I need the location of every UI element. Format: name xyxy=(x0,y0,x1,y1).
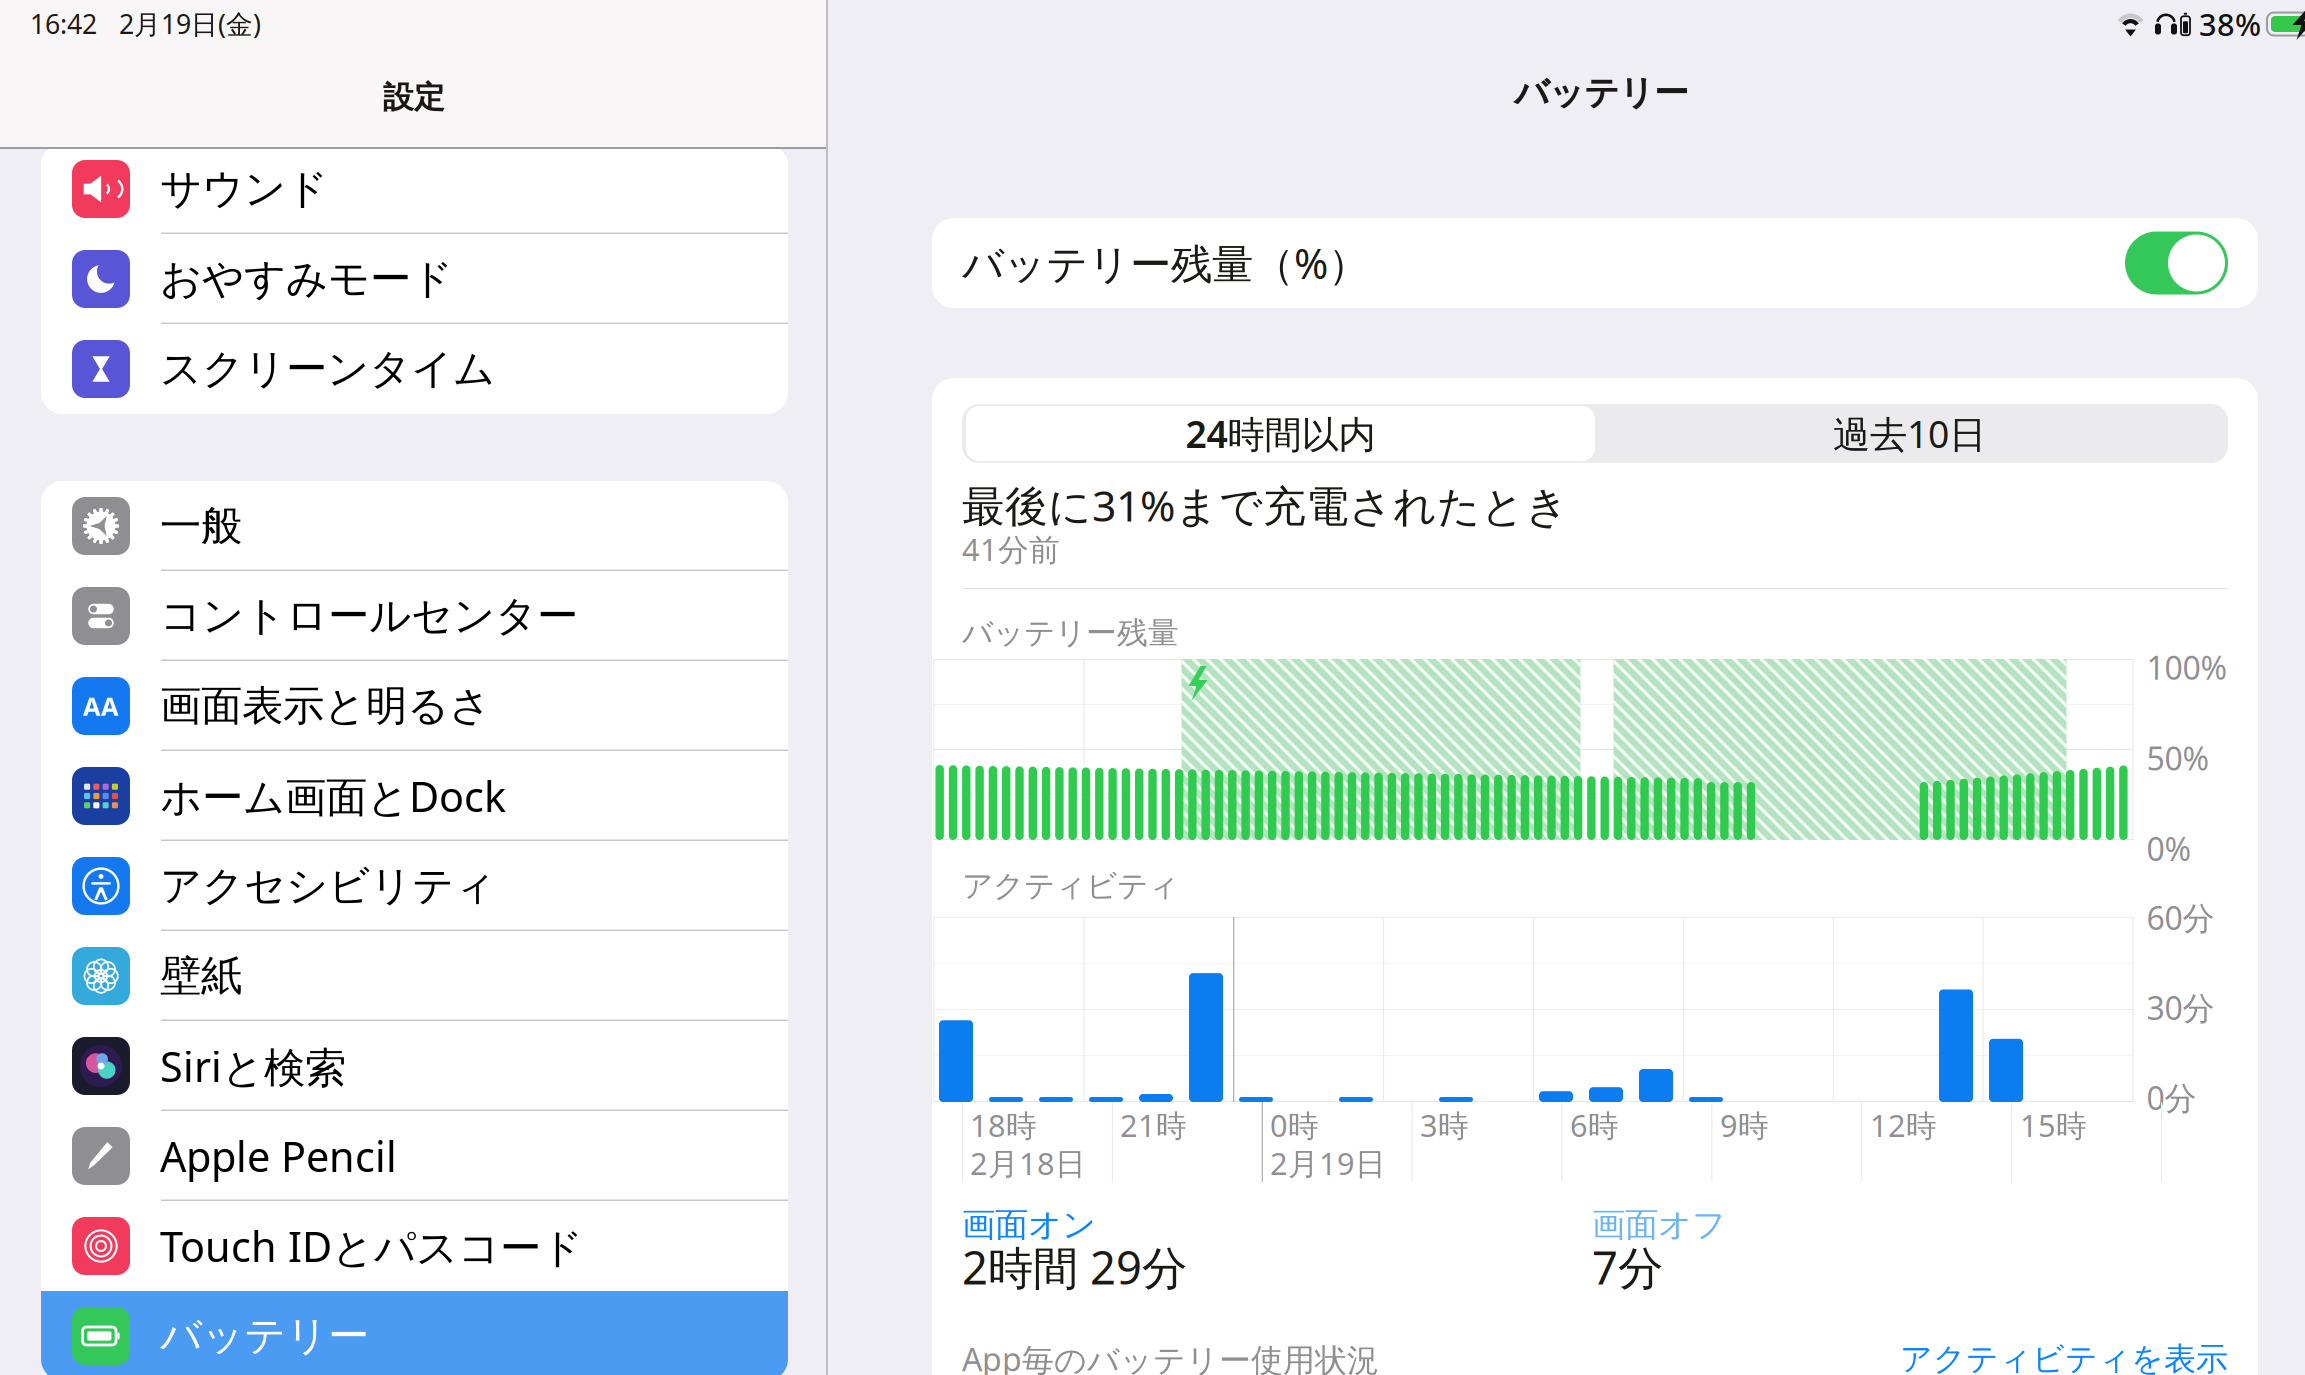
staticText: 21時 xyxy=(1120,1105,1187,1145)
staticText: バッテリー xyxy=(160,1311,369,1361)
staticText: 0% xyxy=(2146,827,2191,870)
staticText: Touch IDとパスコード xyxy=(160,1218,583,1273)
staticText: 画面オン xyxy=(962,1204,1096,1245)
staticText: 0時 xyxy=(1270,1105,1319,1145)
staticText: 9時 xyxy=(1720,1105,1769,1145)
staticText: 24時間以内 xyxy=(1185,409,1375,458)
staticText: バッテリー残量（%） xyxy=(962,236,1369,290)
button[interactable]: スクリーンタイム xyxy=(41,324,788,414)
staticText: 50% xyxy=(2146,737,2209,779)
staticText: 2時間 29分 xyxy=(962,1237,1187,1297)
staticText: 過去10日 xyxy=(1833,409,1986,458)
button[interactable]: バッテリー残量（%） xyxy=(2125,231,2228,294)
staticText: 設定 xyxy=(383,78,445,116)
button[interactable]: Siriと検索 xyxy=(41,1021,788,1111)
staticText: 18時 xyxy=(970,1105,1037,1145)
staticText: 2月18日 xyxy=(970,1143,1086,1183)
staticText: サウンド xyxy=(160,164,328,214)
staticText: 15時 xyxy=(2020,1105,2087,1145)
staticText: 2月19日 xyxy=(1270,1143,1386,1183)
staticText: 38% xyxy=(2199,4,2261,44)
staticText: アクティビティ xyxy=(962,867,1179,905)
button[interactable]: おやすみモード xyxy=(41,234,788,324)
staticText: 60分 xyxy=(2146,896,2214,939)
staticText: バッテリー残量 xyxy=(962,614,1179,652)
button[interactable]: Touch IDとパスコード xyxy=(41,1201,788,1291)
staticText: 16:42 xyxy=(30,6,97,41)
button[interactable]: サウンド xyxy=(41,144,788,234)
staticText: App毎のバッテリー使用状況 xyxy=(962,1338,1379,1375)
staticText: 画面表示と明るさ xyxy=(160,681,491,731)
staticText: 画面オフ xyxy=(1592,1204,1726,1245)
staticText: 壁紙 xyxy=(160,951,242,1001)
staticText: スクリーンタイム xyxy=(160,344,495,394)
staticText: アクセシビリティ xyxy=(160,861,496,911)
staticText: バッテリー xyxy=(1514,72,1689,114)
staticText: Apple Pencil xyxy=(160,1129,397,1183)
staticText: おやすみモード xyxy=(160,254,453,304)
staticText: 0分 xyxy=(2146,1076,2196,1119)
button[interactable]: 一般 xyxy=(41,481,788,571)
staticText: 30分 xyxy=(2146,986,2214,1029)
staticText: AA xyxy=(83,689,119,723)
staticText: 12時 xyxy=(1870,1105,1937,1145)
staticText: 41分前 xyxy=(962,529,1060,569)
staticText: 最後に31%まで充電されたとき xyxy=(962,477,1569,533)
staticText: 100% xyxy=(2146,646,2227,689)
staticText: Siriと検索 xyxy=(160,1038,346,1093)
staticText: 6時 xyxy=(1570,1105,1619,1145)
staticText: 一般 xyxy=(160,501,242,551)
button[interactable]: ホーム画面とDock xyxy=(41,751,788,841)
button[interactable]: アクセシビリティ xyxy=(41,841,788,931)
button[interactable]: AA xyxy=(41,661,788,751)
staticText: ホーム画面とDock xyxy=(160,769,506,823)
button[interactable]: 壁紙 xyxy=(41,931,788,1021)
button[interactable]: Apple Pencil xyxy=(41,1111,788,1201)
staticText: コントロールセンター xyxy=(160,591,578,641)
button[interactable]: バッテリー xyxy=(41,1291,788,1375)
staticText: 3時 xyxy=(1420,1105,1469,1145)
staticText: 2月19日(金) xyxy=(119,6,261,41)
staticText: アクティビティを表示 xyxy=(1900,1339,2228,1375)
staticText: 7分 xyxy=(1592,1237,1663,1297)
button[interactable]: コントロールセンター xyxy=(41,571,788,661)
button[interactable]: 24時間以内 xyxy=(966,406,1595,461)
button[interactable]: アクティビティを表示 xyxy=(1900,1339,2228,1375)
button[interactable]: 過去10日 xyxy=(1595,406,2224,461)
